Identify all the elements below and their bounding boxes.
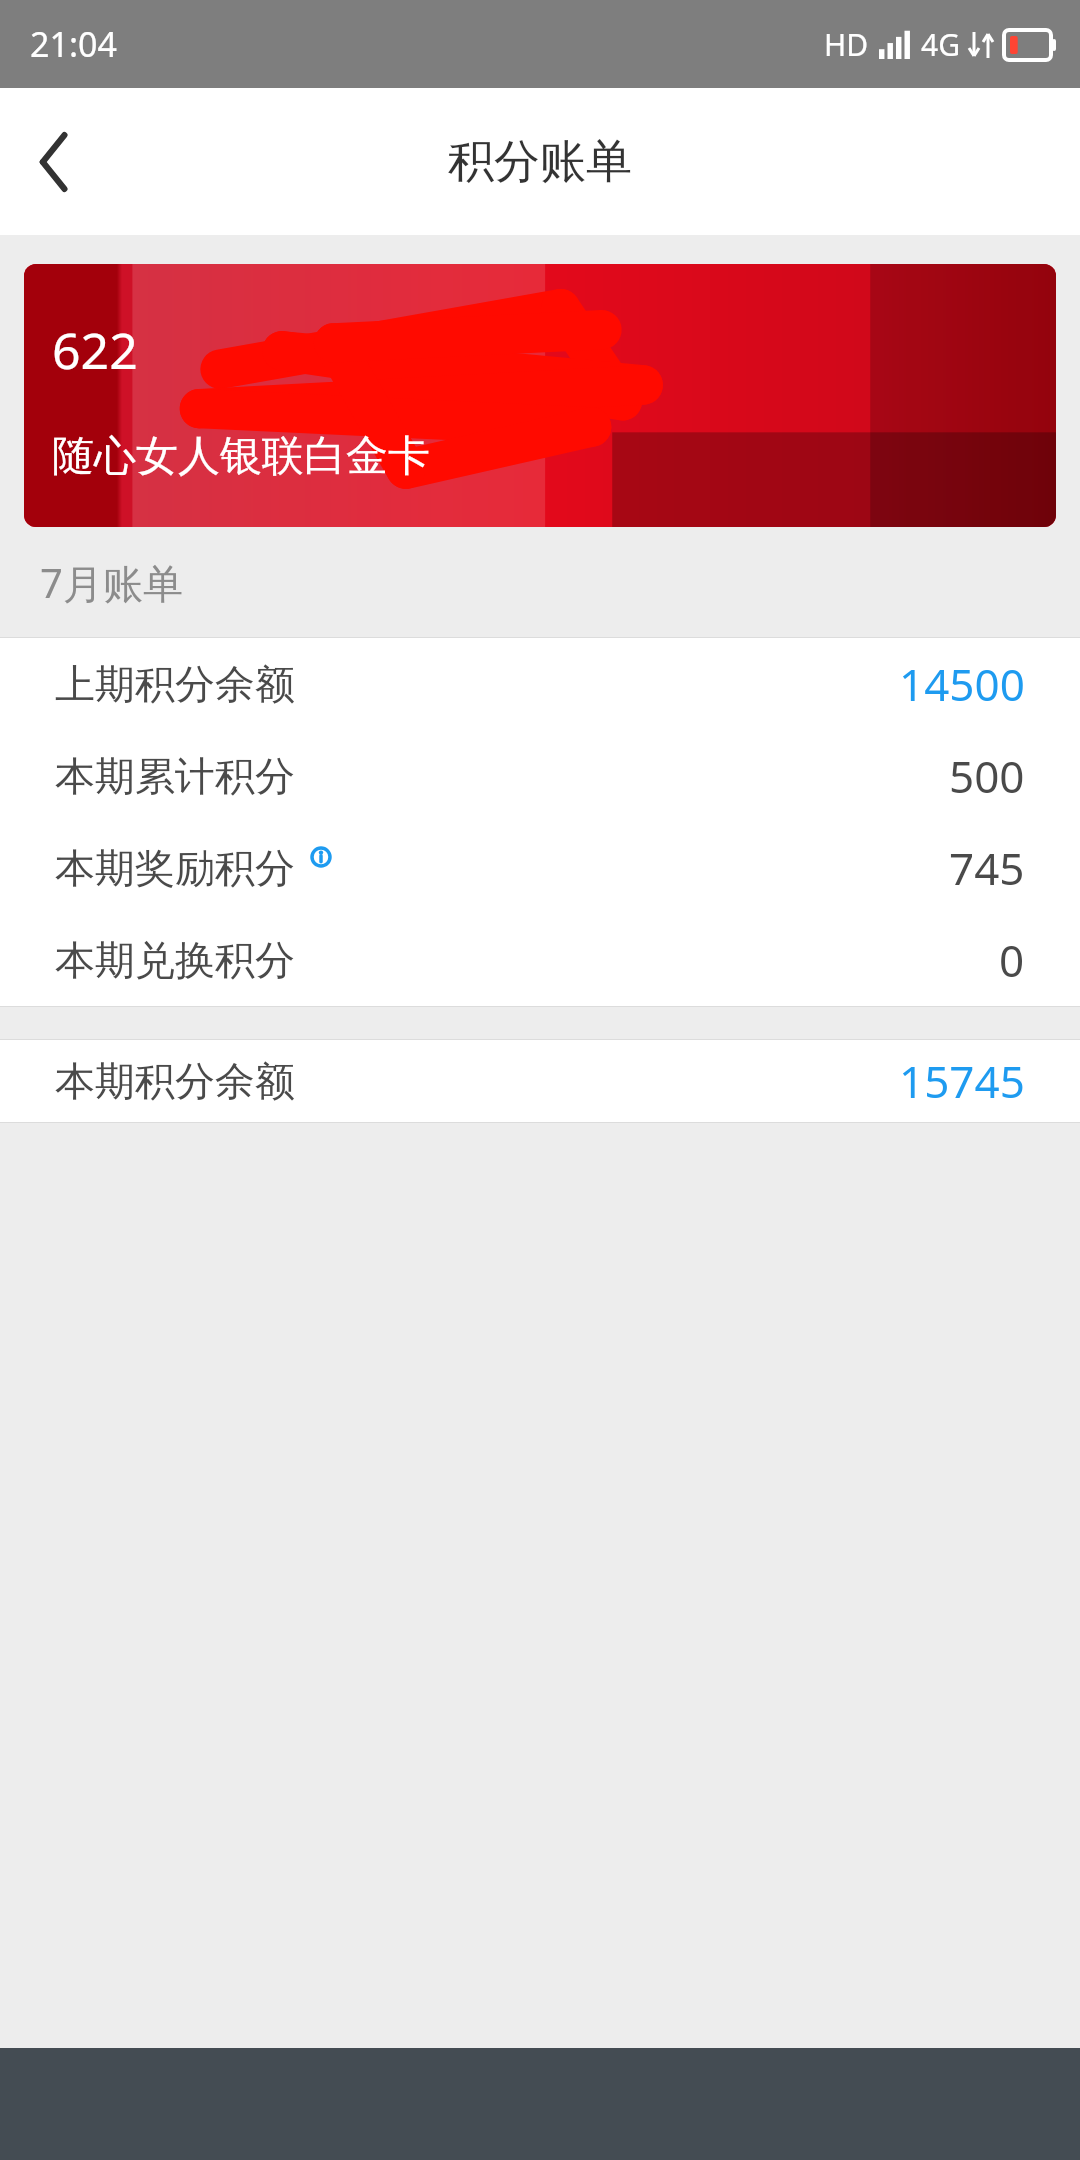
staticText: 上期积分余额 — [55, 659, 295, 709]
button[interactable]: Back — [0, 107, 110, 217]
other: Info — [299, 846, 343, 868]
staticText: 4G — [921, 24, 960, 65]
button[interactable]: 本期累计积分 — [0, 730, 1080, 822]
staticText: HD — [824, 24, 869, 65]
button[interactable]: 本期兑换积分 — [0, 914, 1080, 1006]
staticText: 500 — [949, 746, 1025, 806]
staticText: 本期兑换积分 — [55, 935, 295, 985]
staticText: 本期积分余额 — [55, 1056, 295, 1106]
staticText: 21:04 — [30, 21, 117, 67]
button[interactable]: 上期积分余额 — [0, 638, 1080, 730]
staticText: 随心女人银联白金卡 — [52, 430, 430, 483]
staticText: 积分账单 — [448, 133, 632, 191]
button[interactable]: 本期积分余额 — [0, 1040, 1080, 1122]
staticText: 0 — [999, 930, 1025, 990]
staticText: 本期奖励积分 — [55, 843, 295, 893]
staticText: 622 — [52, 316, 138, 384]
staticText: 7月账单 — [40, 555, 183, 610]
staticText: 15745 — [899, 1051, 1025, 1111]
staticText: 745 — [949, 838, 1025, 898]
button[interactable]: 本期奖励积分 — [0, 822, 1080, 914]
staticText: 本期累计积分 — [55, 751, 295, 801]
button[interactable]: 622 — [24, 264, 1056, 527]
staticText: 14500 — [899, 654, 1025, 714]
